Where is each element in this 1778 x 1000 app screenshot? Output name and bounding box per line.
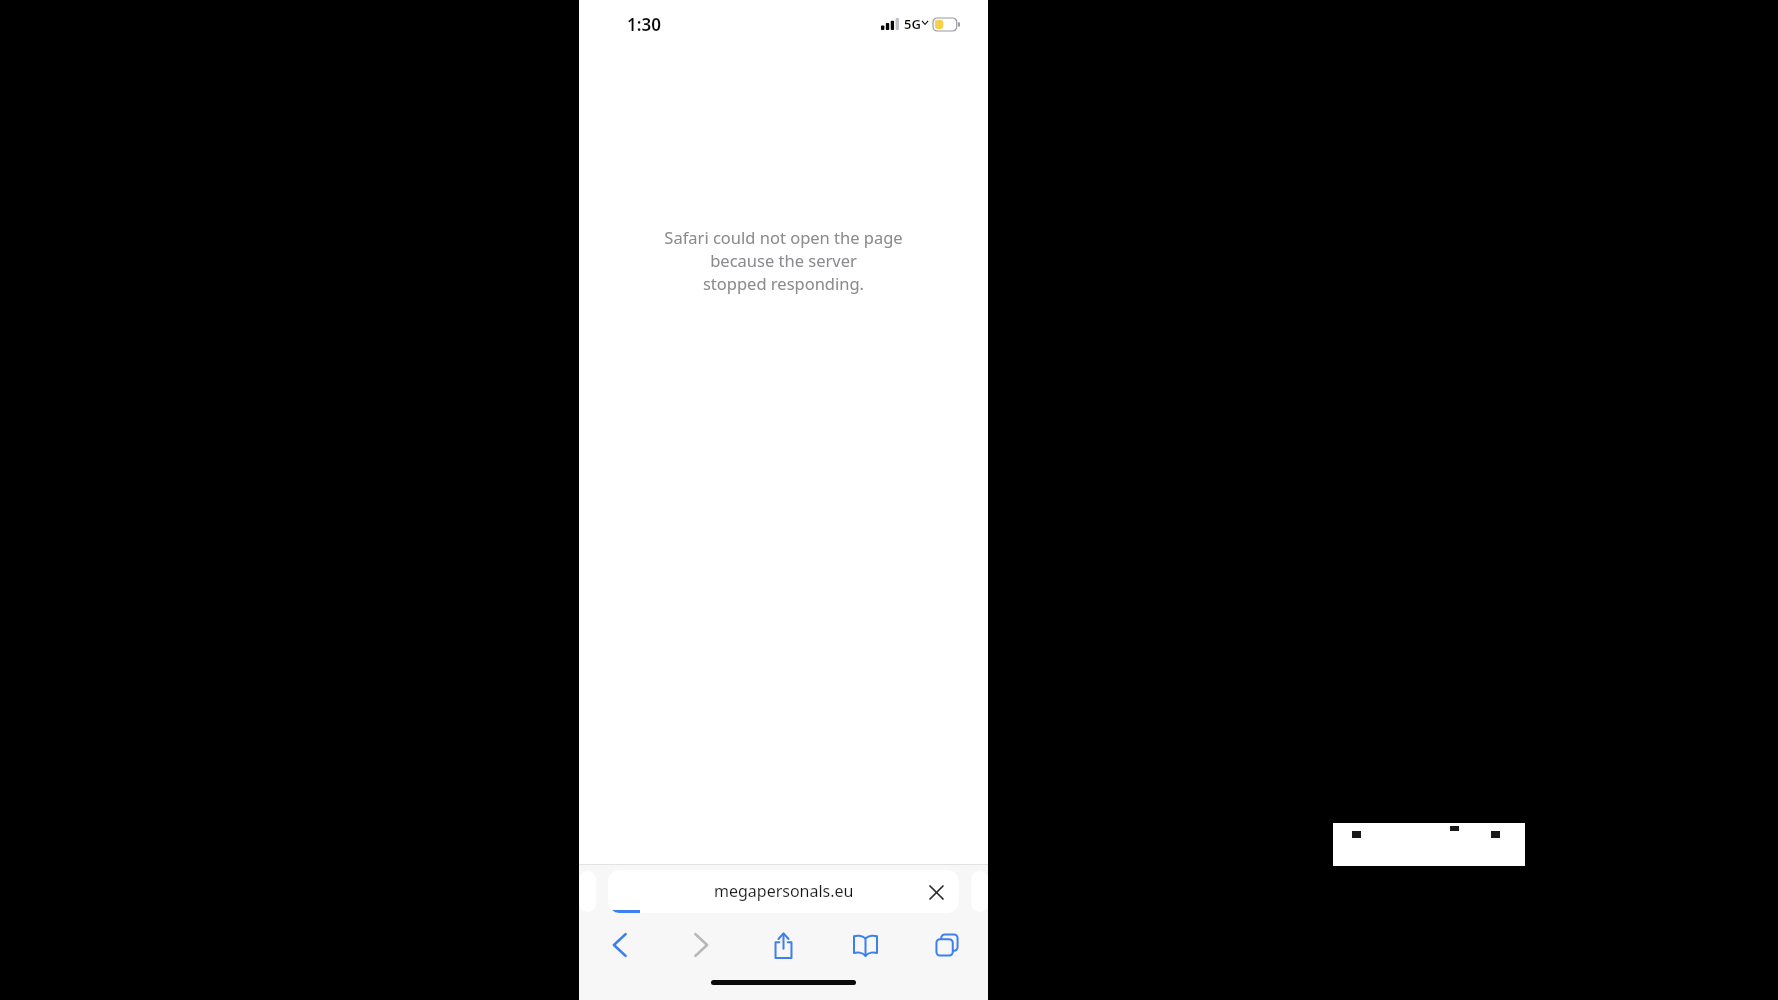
button[interactable]: Back xyxy=(579,918,660,972)
staticText: Safari could not open the page because t… xyxy=(579,226,988,295)
button[interactable]: Share xyxy=(742,918,824,972)
button[interactable]: megapersonals.eu xyxy=(608,870,959,913)
button[interactable]: Forward xyxy=(660,918,742,972)
staticText: megapersonals.eu xyxy=(714,880,854,902)
staticText: 5G xyxy=(904,15,921,33)
button[interactable]: Stop loading xyxy=(921,877,951,907)
staticText: 1:30 xyxy=(627,13,661,36)
button[interactable]: Tabs xyxy=(906,918,988,972)
button[interactable]: Bookmarks xyxy=(824,918,906,972)
